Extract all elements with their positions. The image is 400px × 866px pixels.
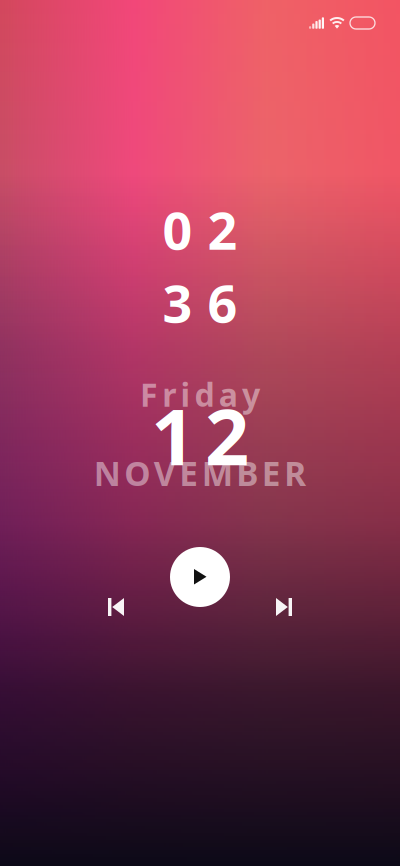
staticText: B <box>236 451 258 495</box>
button[interactable]: Previous track <box>108 598 124 616</box>
staticText: N <box>94 451 121 495</box>
staticText: r <box>162 373 176 415</box>
staticText: E <box>179 451 198 495</box>
staticText: 0 <box>162 195 192 264</box>
button[interactable]: Play <box>170 547 230 607</box>
staticText: 1 <box>151 384 195 487</box>
staticText: F <box>140 373 158 415</box>
staticText: 2 <box>205 384 249 487</box>
staticText: 2 <box>207 195 237 264</box>
staticText: i <box>180 373 190 415</box>
staticText: R <box>284 451 306 495</box>
staticText: 6 <box>207 268 237 337</box>
staticText: d <box>195 373 215 415</box>
staticText: E <box>262 451 281 495</box>
staticText: a <box>219 373 238 415</box>
staticText: 3 <box>162 268 192 337</box>
staticText: y <box>242 373 260 415</box>
button[interactable]: Next track <box>276 598 292 616</box>
staticText: V <box>154 451 176 495</box>
staticText: O <box>124 451 150 495</box>
staticText: M <box>202 451 233 495</box>
